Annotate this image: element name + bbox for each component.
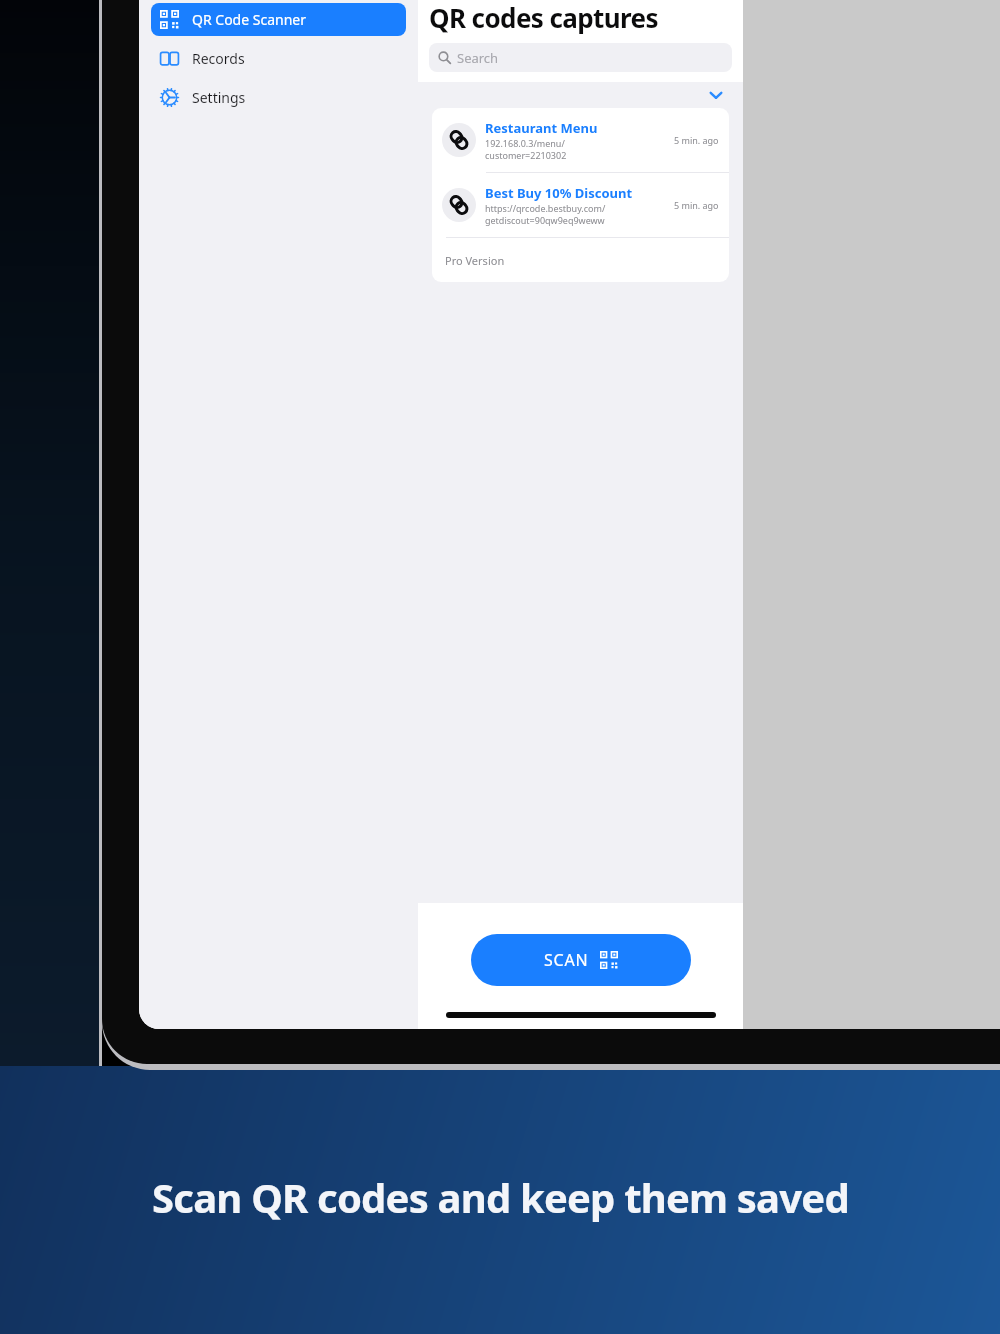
staticText: Scan QR codes and keep them saved	[152, 1170, 849, 1224]
staticText: customer=2210302	[485, 149, 567, 161]
staticText: Best Buy 10% Discount	[485, 184, 633, 202]
staticText: QR Code Scanner	[192, 10, 306, 29]
staticText: 5 min. ago	[674, 134, 719, 146]
staticText: https://qrcode.bestbuy.com/	[485, 202, 606, 214]
button[interactable]: SCAN	[471, 934, 691, 986]
button[interactable]: Restaurant Menu	[432, 108, 729, 172]
staticText: Pro Version	[445, 253, 505, 268]
button[interactable]: Search	[429, 43, 732, 72]
staticText: QR codes captures	[429, 0, 658, 35]
staticText: 192.168.0.3/menu/	[485, 137, 565, 149]
staticText: 5 min. ago	[674, 199, 719, 211]
button[interactable]: Collapse list	[705, 84, 727, 106]
button[interactable]: Settings	[151, 81, 406, 114]
staticText: Search	[457, 49, 499, 67]
button[interactable]: Pro Version	[432, 238, 729, 282]
staticText: Settings	[192, 88, 246, 107]
staticText: Records	[192, 49, 245, 68]
button[interactable]: Best Buy 10% Discount	[432, 173, 729, 237]
button[interactable]: QR Code Scanner	[151, 3, 406, 36]
staticText: SCAN	[544, 949, 589, 971]
staticText: Restaurant Menu	[485, 119, 598, 137]
button[interactable]: Records	[151, 42, 406, 75]
staticText: getdiscout=90qw9eq9weww	[485, 214, 605, 226]
